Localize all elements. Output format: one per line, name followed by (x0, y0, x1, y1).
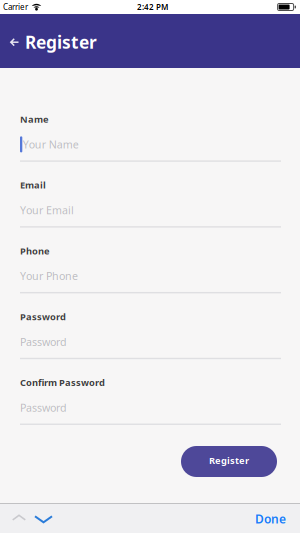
button[interactable]: Back (10, 38, 19, 46)
staticText: Password (20, 310, 66, 323)
button[interactable]: Your Email (20, 202, 281, 228)
staticText: Your Email (20, 203, 74, 217)
staticText: Password (20, 335, 67, 349)
staticText: Register (209, 454, 249, 467)
staticText: Password (20, 400, 67, 415)
button[interactable]: Done (255, 503, 286, 527)
staticText: Carrier (3, 2, 28, 12)
staticText: Register (25, 30, 97, 53)
staticText: Phone (20, 245, 50, 257)
staticText: 2:42 PM (137, 2, 168, 12)
staticText: Confirm Password (20, 376, 105, 389)
button[interactable]: Password (20, 334, 281, 359)
staticText: Email (20, 179, 46, 191)
button[interactable]: Your Name (20, 136, 281, 162)
staticText: Name (20, 113, 49, 125)
button[interactable]: Password (20, 400, 281, 425)
button[interactable]: Your Phone (20, 268, 281, 293)
staticText: Your Name (23, 137, 79, 151)
button[interactable]: Previous field (12, 514, 26, 520)
button[interactable]: Register (181, 446, 277, 477)
staticText: Your Phone (20, 269, 78, 283)
button[interactable]: Next field (34, 515, 53, 523)
staticText: Done (255, 511, 286, 527)
